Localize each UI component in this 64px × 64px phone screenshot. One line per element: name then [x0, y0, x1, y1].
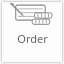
other: Order [10, 3, 54, 29]
button[interactable]: Order [1, 1, 63, 63]
staticText: Order [17, 31, 48, 46]
